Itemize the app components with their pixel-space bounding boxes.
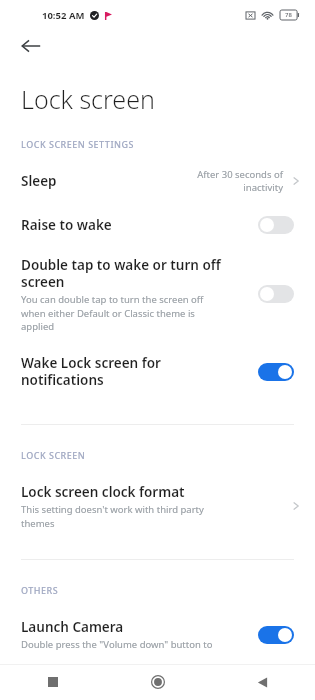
button[interactable]: Lock screen clock format	[0, 483, 315, 529]
other: Open	[289, 499, 303, 513]
button[interactable]: Off	[258, 285, 294, 303]
staticText: Double press the "Volume down" button to	[21, 638, 213, 651]
staticText: LOCK SCREEN SETTINGS	[21, 138, 135, 150]
button[interactable]: On	[258, 626, 294, 644]
staticText: Double tap to wake or turn off screen	[21, 256, 221, 291]
other: Open	[289, 174, 303, 188]
button[interactable]: Launch Camera	[0, 618, 315, 651]
button[interactable]: Double tap to wake or turn off screen	[0, 256, 315, 332]
staticText: 78	[285, 11, 292, 19]
button[interactable]: Sleep	[0, 168, 315, 194]
staticText: Lock screen clock format	[21, 483, 185, 501]
button[interactable]: Wake Lock screen for notifications	[0, 354, 315, 389]
staticText: You can double tap to turn the screen of…	[21, 293, 204, 332]
staticText: Lock screen	[21, 82, 155, 116]
button[interactable]: Recents	[0, 664, 105, 700]
staticText: 10:52 AM	[42, 9, 85, 22]
staticText: Launch Camera	[21, 618, 124, 636]
staticText: OTHERS	[21, 584, 59, 596]
button[interactable]: Raise to wake	[0, 216, 315, 234]
staticText: Wake Lock screen for notifications	[21, 354, 246, 389]
staticText: Raise to wake	[21, 216, 248, 234]
button[interactable]: Back	[210, 664, 315, 700]
button[interactable]: Back	[0, 30, 315, 64]
staticText: This setting doesn't work with third par…	[21, 503, 204, 529]
button[interactable]: Off	[258, 216, 294, 234]
staticText: After 30 seconds of inactivity	[197, 168, 283, 194]
staticText: Sleep	[21, 172, 57, 190]
button[interactable]: Home	[105, 664, 210, 700]
button[interactable]: On	[258, 363, 294, 381]
staticText: LOCK SCREEN	[21, 449, 86, 461]
